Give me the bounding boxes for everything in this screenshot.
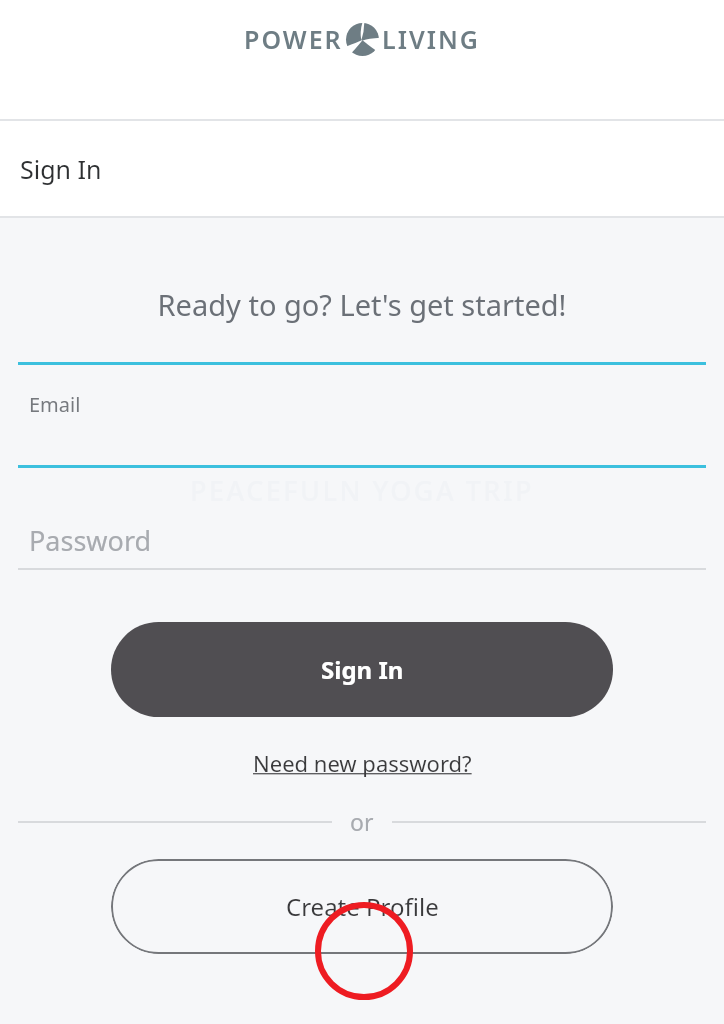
button[interactable]: Need new password? <box>247 742 478 784</box>
staticText: Ready to go? Let's get started! <box>0 285 724 324</box>
button[interactable]: Email <box>0 365 724 465</box>
staticText: Need new password? <box>253 748 472 778</box>
staticText: or <box>350 806 374 837</box>
staticText: Password <box>29 522 152 559</box>
button[interactable]: Create Profile <box>111 859 613 954</box>
staticText: Email <box>29 391 81 418</box>
staticText: Create Profile <box>286 890 439 923</box>
staticText: POWER <box>244 22 343 56</box>
staticText: Sign In <box>20 152 102 186</box>
staticText: Sign In <box>321 653 404 686</box>
button[interactable]: Password <box>0 513 724 568</box>
button[interactable]: Sign In <box>111 622 613 717</box>
staticText: LIVING <box>382 22 480 56</box>
